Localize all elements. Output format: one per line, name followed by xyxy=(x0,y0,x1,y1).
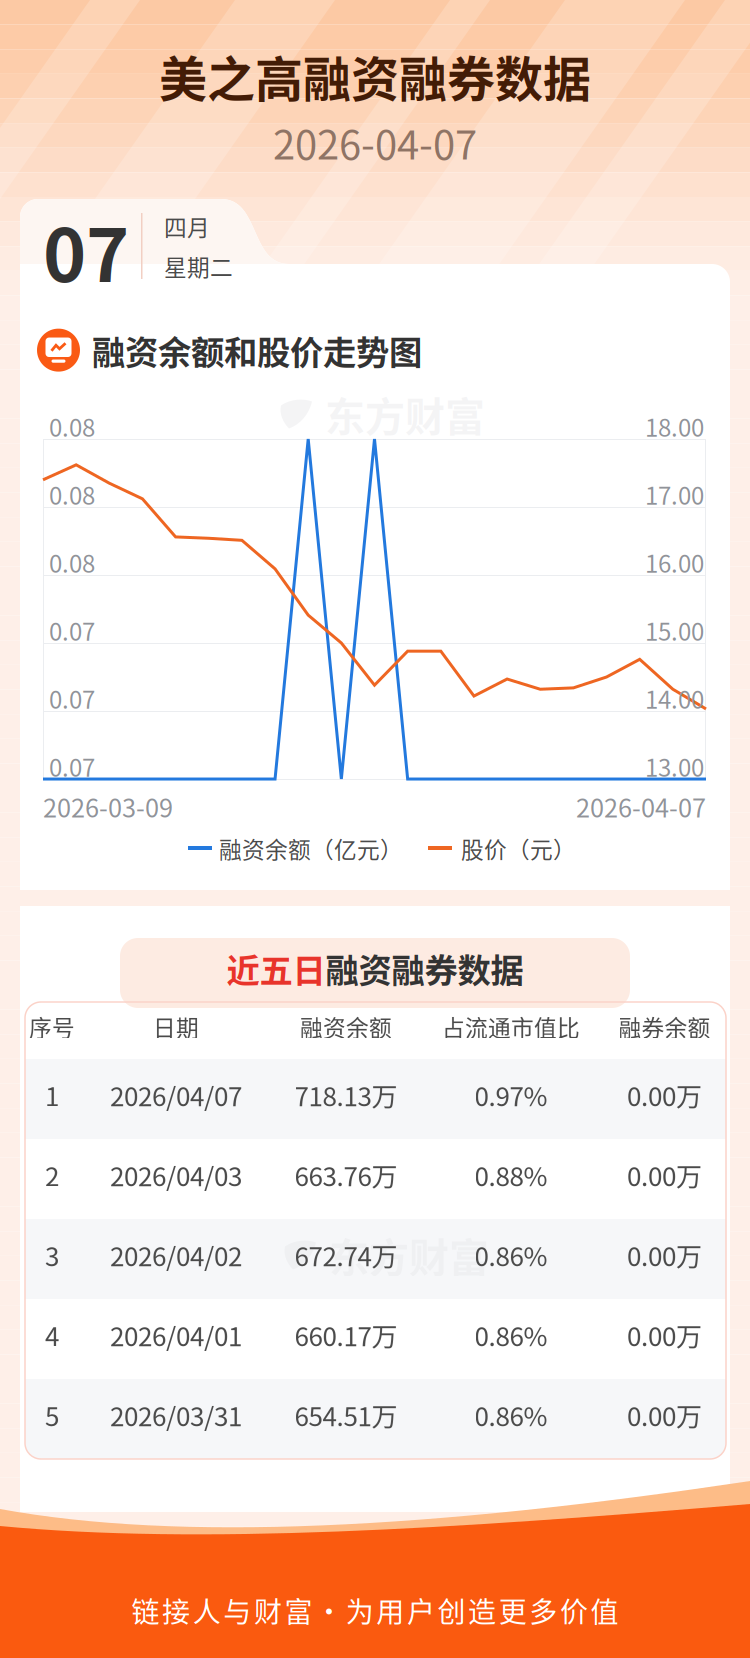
staticText: 2026/04/01 xyxy=(110,1316,242,1354)
staticText: 0.00万 xyxy=(627,1156,702,1194)
staticText: 链接人与财富·为用户创造更多价值 xyxy=(131,1590,618,1630)
staticText: 美之高融资融券数据 xyxy=(159,41,591,110)
staticText: 融资余额和股价走势图 xyxy=(92,326,422,374)
staticText: 东方财富 xyxy=(325,385,485,443)
staticText: 0.86% xyxy=(474,1236,547,1274)
staticText: 东方财富 xyxy=(329,1226,489,1284)
staticText: 2026-04-07 xyxy=(273,113,477,171)
staticText: 4 xyxy=(45,1316,59,1354)
staticText: 股价（元） xyxy=(461,832,576,865)
staticText: 3 xyxy=(45,1236,59,1274)
staticText: 0.07 xyxy=(49,681,95,716)
staticText: 1 xyxy=(45,1076,59,1114)
staticText: 序号 xyxy=(29,1010,75,1043)
staticText: 07 xyxy=(43,197,129,303)
staticText: 星期二 xyxy=(164,250,233,283)
staticText: 融资融券数据 xyxy=(325,944,523,992)
staticText: 2026/04/07 xyxy=(110,1076,242,1114)
staticText: 0.88% xyxy=(474,1156,547,1194)
staticText: 663.76万 xyxy=(294,1156,397,1194)
staticText: 0.08 xyxy=(49,477,95,512)
staticText: 18.00 xyxy=(645,409,704,444)
staticText: 0.07 xyxy=(49,613,95,648)
staticText: 2 xyxy=(45,1156,59,1194)
staticText: 0.00万 xyxy=(627,1236,702,1274)
staticText: 日期 xyxy=(153,1010,199,1043)
staticText: 0.86% xyxy=(474,1316,547,1354)
staticText: 0.00万 xyxy=(627,1076,702,1114)
staticText: 融券余额 xyxy=(618,1010,710,1043)
staticText: 近五日 xyxy=(226,944,325,992)
staticText: 13.00 xyxy=(645,749,704,784)
staticText: 5 xyxy=(45,1396,59,1434)
staticText: 0.00万 xyxy=(627,1316,702,1354)
staticText: 0.07 xyxy=(49,749,95,784)
staticText: 0.86% xyxy=(474,1396,547,1434)
staticText: 672.74万 xyxy=(294,1236,397,1274)
staticText: 15.00 xyxy=(645,613,704,648)
staticText: 占流通市值比 xyxy=(442,1010,580,1043)
staticText: 四月 xyxy=(164,210,210,243)
staticText: 2026/04/03 xyxy=(110,1156,242,1194)
staticText: 718.13万 xyxy=(294,1076,397,1114)
staticText: 17.00 xyxy=(645,477,704,512)
staticText: 融资余额 xyxy=(300,1010,392,1043)
staticText: 2026-03-09 xyxy=(43,788,173,825)
staticText: 融资余额（亿元） xyxy=(219,832,403,865)
staticText: 660.17万 xyxy=(294,1316,397,1354)
staticText: 0.00万 xyxy=(627,1396,702,1434)
staticText: 0.97% xyxy=(474,1076,547,1114)
staticText: 2026-04-07 xyxy=(576,788,706,825)
staticText: 2026/03/31 xyxy=(110,1396,242,1434)
staticText: 16.00 xyxy=(645,545,704,580)
staticText: 654.51万 xyxy=(294,1396,397,1434)
staticText: 0.08 xyxy=(49,409,95,444)
staticText: 14.00 xyxy=(645,681,704,716)
staticText: 2026/04/02 xyxy=(110,1236,242,1274)
staticText: 0.08 xyxy=(49,545,95,580)
